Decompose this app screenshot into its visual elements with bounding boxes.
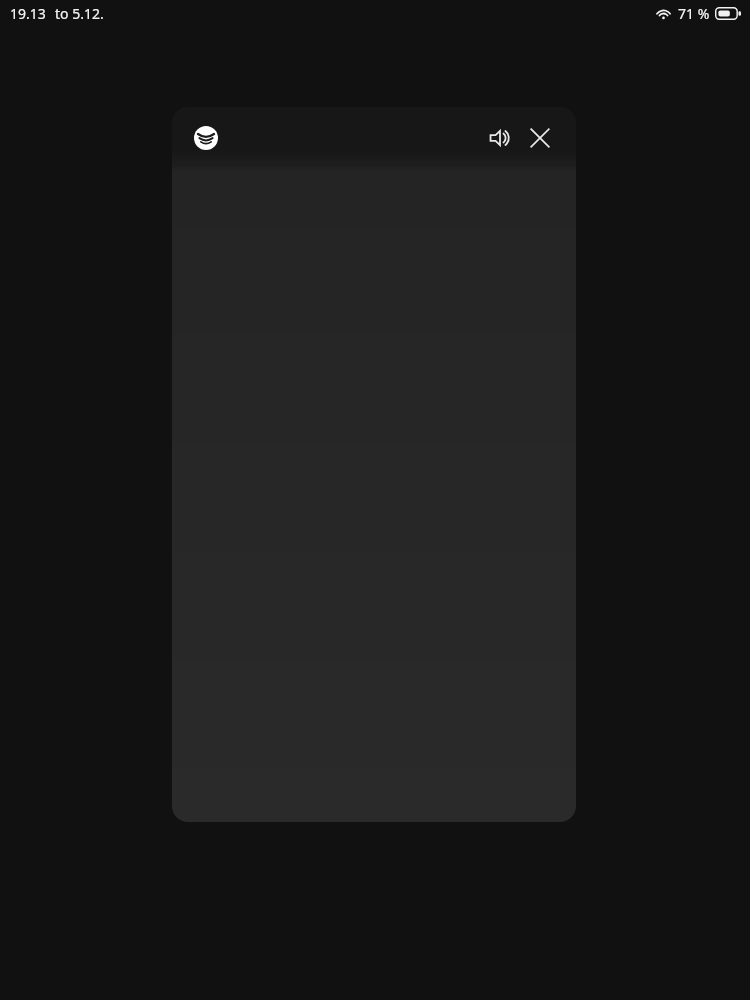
button[interactable]: Close xyxy=(523,121,557,155)
staticText: to 5.12. xyxy=(55,4,104,23)
staticText: 71 % xyxy=(678,4,710,23)
button[interactable]: Volume xyxy=(483,121,517,155)
staticText: 19.13 xyxy=(10,4,46,23)
button[interactable]: Spotify xyxy=(191,123,221,153)
